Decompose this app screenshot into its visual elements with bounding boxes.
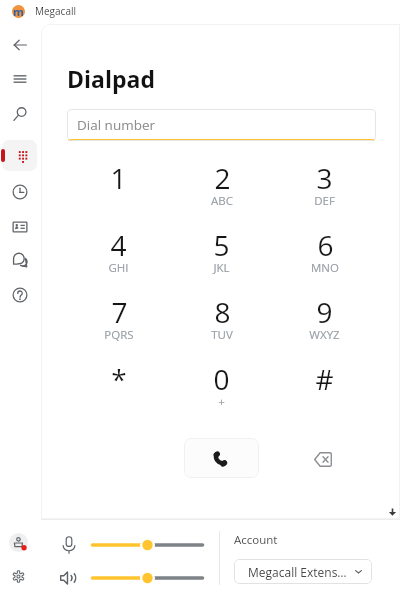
button[interactable]: Dial number	[67, 109, 376, 141]
button[interactable]: Menu	[7, 66, 33, 92]
staticText: 0	[213, 360, 230, 398]
staticText: PQRS	[104, 327, 134, 343]
button[interactable]: Speaker volume	[91, 570, 204, 586]
staticText: Dial number	[77, 116, 156, 134]
staticText: JKL	[213, 260, 230, 276]
staticText: 9	[316, 293, 333, 331]
button[interactable]: Help	[7, 282, 33, 308]
staticText: m	[13, 5, 24, 17]
staticText: GHI	[108, 260, 129, 276]
button[interactable]: 6	[273, 225, 376, 292]
button[interactable]: Settings	[5, 563, 32, 590]
button[interactable]: Back	[7, 32, 33, 58]
button[interactable]: 9	[273, 292, 376, 359]
button[interactable]: Dialpad	[0, 140, 41, 171]
staticText: Dialpad	[67, 63, 155, 94]
staticText: Megacall Extens…	[248, 564, 347, 580]
staticText: 2	[214, 159, 231, 197]
button[interactable]: Scroll down	[380, 499, 400, 519]
button[interactable]: 4	[67, 225, 170, 292]
button[interactable]: Messages	[7, 247, 33, 273]
button[interactable]: 5	[170, 225, 273, 292]
button[interactable]: Profile	[5, 529, 32, 556]
button[interactable]: 0	[170, 359, 273, 426]
button[interactable]: Microphone volume	[91, 537, 204, 553]
staticText: DEF	[314, 193, 335, 209]
button[interactable]: 3	[273, 158, 376, 225]
button[interactable]: Contacts	[7, 214, 33, 240]
staticText: WXYZ	[309, 327, 340, 343]
button[interactable]: *	[67, 359, 170, 426]
staticText: ABC	[211, 193, 233, 209]
staticText: 4	[110, 226, 127, 264]
staticText: 3	[316, 159, 333, 197]
button[interactable]: Call	[184, 438, 259, 478]
staticText: 5	[213, 226, 230, 264]
staticText: 8	[214, 293, 231, 331]
button[interactable]: 2	[170, 158, 273, 225]
staticText: *	[111, 360, 127, 398]
button[interactable]: 7	[67, 292, 170, 359]
button[interactable]: Backspace	[306, 441, 340, 475]
staticText: Megacall	[35, 4, 76, 18]
button[interactable]: Search	[7, 101, 33, 127]
staticText: 7	[111, 293, 128, 331]
staticText: 6	[317, 226, 334, 264]
button[interactable]: 8	[170, 292, 273, 359]
staticText: Account	[234, 532, 278, 548]
button[interactable]: 1	[67, 158, 170, 225]
staticText: #	[315, 360, 334, 398]
button[interactable]: Recent calls	[7, 179, 33, 205]
button[interactable]: #	[273, 359, 376, 426]
staticText: 1	[110, 159, 127, 197]
staticText: MNO	[311, 260, 339, 276]
staticText: +	[218, 394, 225, 410]
button[interactable]: Megacall Extens…	[234, 559, 372, 584]
staticText: TUV	[211, 327, 233, 343]
